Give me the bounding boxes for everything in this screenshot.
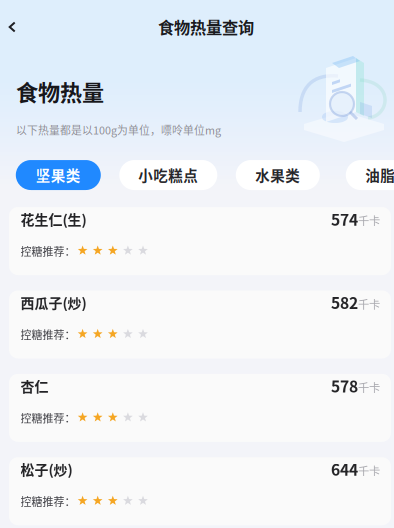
button[interactable]: 西瓜子(炒)	[9, 290, 391, 358]
button[interactable]: 小吃糕点	[119, 160, 217, 190]
staticText: 578	[331, 374, 358, 397]
staticText: 杏仁	[20, 376, 48, 396]
staticText: 食物热量	[16, 75, 104, 107]
button[interactable]: 坚果类	[16, 160, 101, 190]
staticText: 千卡	[358, 212, 380, 229]
staticText: 控糖推荐：	[20, 410, 75, 426]
staticText: 控糖推荐：	[20, 326, 75, 342]
button[interactable]: 水果类	[236, 160, 320, 190]
staticText: 千卡	[358, 296, 380, 312]
staticText: 千卡	[358, 462, 380, 479]
staticText: 582	[331, 291, 358, 313]
staticText: 西瓜子(炒)	[20, 292, 86, 312]
staticText: 坚果类	[36, 164, 81, 185]
button[interactable]: 杏仁	[9, 374, 391, 442]
staticText: 控糖推荐：	[20, 243, 75, 259]
button[interactable]: 松子(炒)	[9, 457, 391, 525]
staticText: 574	[331, 207, 358, 230]
button[interactable]: Back	[0, 0, 28, 42]
staticText: 644	[331, 458, 358, 480]
staticText: 控糖推荐：	[20, 493, 75, 509]
staticText: 食物热量查询	[158, 15, 254, 38]
staticText: 小吃糕点	[138, 164, 198, 185]
button[interactable]: 花生仁(生)	[9, 207, 391, 275]
staticText: 油脂类	[365, 164, 394, 185]
staticText: 以下热量都是以100g为单位，嘌呤单位mg	[16, 122, 221, 138]
staticText: 水果类	[255, 164, 300, 185]
staticText: 松子(炒)	[20, 459, 72, 479]
staticText: 千卡	[358, 379, 380, 395]
button[interactable]: 油脂类	[346, 160, 394, 190]
staticText: 花生仁(生)	[20, 209, 86, 229]
